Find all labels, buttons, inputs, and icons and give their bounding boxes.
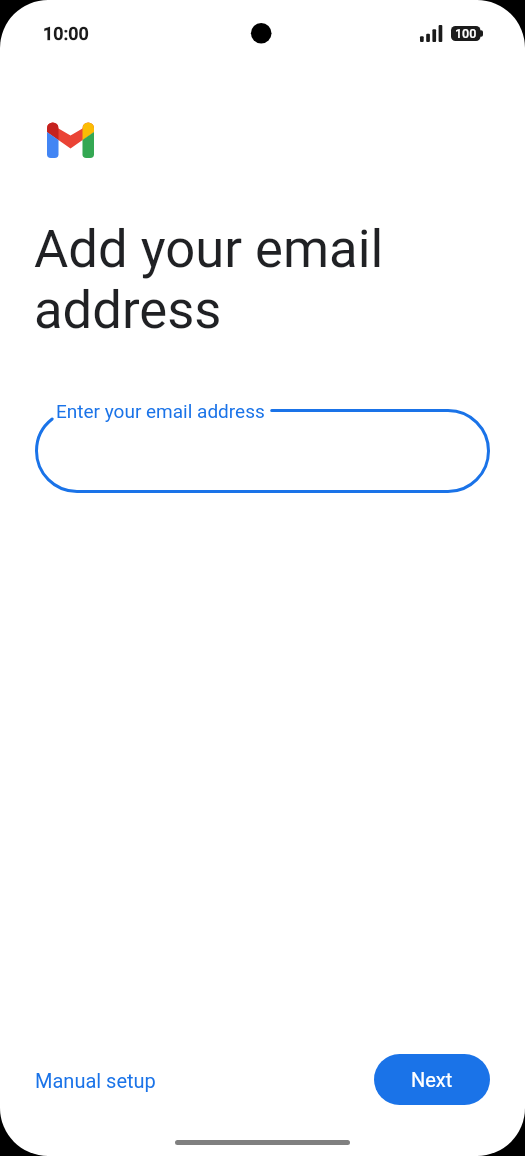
button[interactable]: Manual setup — [23, 1061, 168, 1100]
staticText: 100 — [455, 26, 477, 41]
button[interactable] — [35, 409, 490, 493]
other: Battery 100 percent — [451, 26, 483, 41]
staticText: 10:00 — [43, 23, 89, 44]
staticText: Enter your email address — [56, 400, 265, 422]
other: Mobile signal — [420, 24, 443, 42]
staticText: Manual setup — [35, 1069, 156, 1092]
staticText: Next — [411, 1068, 453, 1091]
button[interactable]: Next — [374, 1054, 490, 1105]
staticText: Add your email address — [34, 218, 384, 341]
